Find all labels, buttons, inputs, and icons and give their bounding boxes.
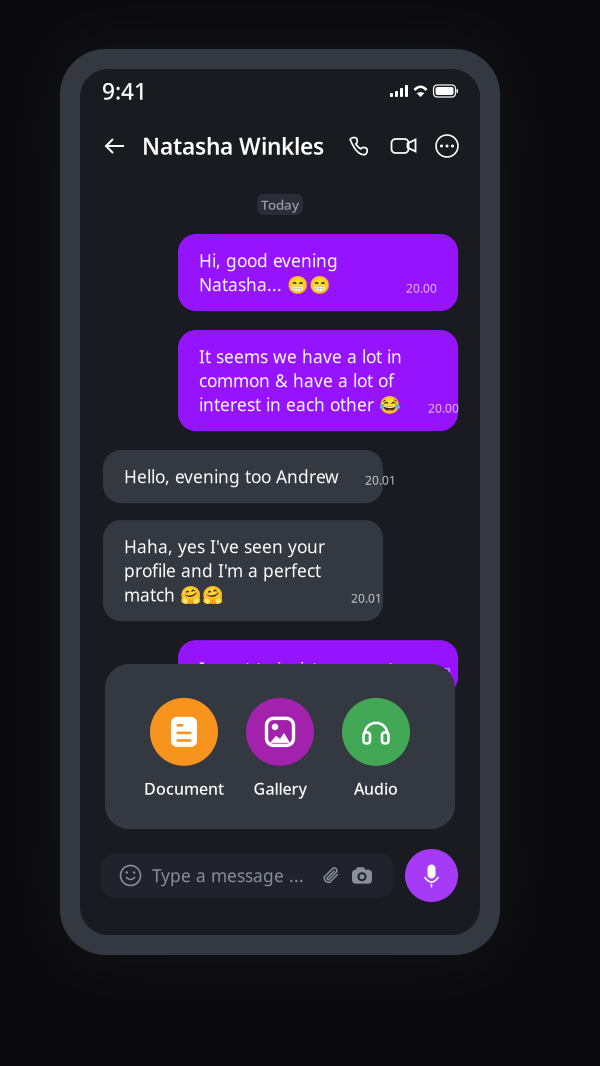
button[interactable]: Attach file [322, 865, 340, 885]
staticText: I want to insist we meet [199, 657, 394, 680]
staticText: 20.01 [351, 590, 382, 606]
staticText: Document [144, 778, 224, 799]
staticText: Audio [354, 778, 398, 799]
button[interactable]: More options [432, 131, 462, 161]
staticText: 20.02 [420, 664, 451, 680]
button[interactable]: Back [98, 129, 132, 163]
button[interactable]: Camera [352, 867, 372, 884]
staticText: It seems we have a lot in [199, 345, 402, 368]
staticText: Hello, evening too Andrew [124, 465, 339, 488]
staticText: 9:41 [102, 76, 147, 106]
button[interactable]: Haha, yes I've seen your [103, 520, 383, 621]
button[interactable]: Gallery [246, 698, 314, 799]
staticText: interest in each other 😂 [199, 393, 401, 416]
staticText: profile and I'm a perfect [124, 559, 321, 582]
staticText: 20.01 [365, 472, 396, 488]
button[interactable]: I want to insist we meet [178, 640, 458, 695]
button[interactable]: Hello, evening too Andrew [103, 450, 383, 503]
staticText: 20.00 [406, 280, 437, 296]
button[interactable]: It seems we have a lot in [178, 330, 458, 431]
staticText: Today [261, 196, 299, 213]
button[interactable]: Video call [388, 131, 418, 161]
staticText: Hi, good evening [199, 249, 338, 272]
staticText: match 🤗🤗 [124, 583, 224, 606]
button[interactable]: Record voice message [405, 849, 458, 902]
staticText: common & have a lot of [199, 369, 394, 392]
staticText: Haha, yes I've seen your [124, 535, 325, 558]
staticText: Natasha Winkles [142, 131, 324, 161]
staticText: Natasha... 😁😁 [199, 273, 331, 296]
button[interactable]: Document [150, 698, 218, 799]
staticText: 20.00 [428, 400, 459, 416]
button[interactable]: Hi, good evening [178, 234, 458, 311]
staticText: Type a message ... [152, 864, 304, 887]
staticText: Gallery [253, 778, 306, 799]
button[interactable]: Call [344, 131, 374, 161]
button[interactable]: Audio [342, 698, 410, 799]
